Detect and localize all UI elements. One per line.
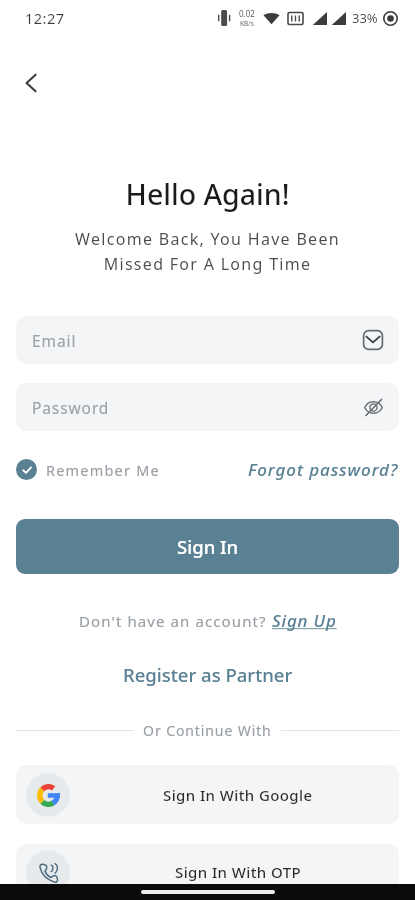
- staticText: Sign In With OTP: [175, 862, 302, 882]
- staticText: Remember Me: [46, 460, 160, 480]
- staticText: 0.02: [239, 8, 255, 19]
- button[interactable]: Register as Partner: [0, 662, 415, 687]
- button[interactable]: Sign In: [16, 519, 399, 574]
- staticText: KB/s: [240, 19, 254, 28]
- staticText: Password: [32, 397, 110, 418]
- button[interactable]: Email: [16, 316, 399, 364]
- staticText: Email: [32, 330, 77, 351]
- staticText: Sign In With Google: [163, 785, 313, 805]
- button[interactable]: Password: [16, 383, 399, 431]
- button[interactable]: Back: [11, 63, 51, 103]
- button[interactable]: Sign In With Google: [16, 765, 399, 824]
- staticText: 33%: [352, 9, 378, 27]
- staticText: Don't have an account?: [79, 611, 272, 631]
- button[interactable]: Sign In With OTP: [16, 844, 399, 900]
- button[interactable]: Forgot password?: [248, 458, 399, 481]
- button[interactable]: Sign Up: [272, 609, 337, 632]
- staticText: 12:27: [25, 8, 65, 28]
- staticText: Sign In: [177, 534, 239, 559]
- staticText: Welcome Back, You Have Been Missed For A…: [0, 228, 415, 274]
- staticText: Hello Again!: [0, 175, 415, 214]
- staticText: Sign Up: [272, 609, 337, 632]
- staticText: Forgot password?: [248, 458, 399, 481]
- button[interactable]: Remember Me: [16, 459, 160, 480]
- staticText: Or Continue With: [134, 721, 281, 740]
- staticText: Register as Partner: [123, 662, 293, 687]
